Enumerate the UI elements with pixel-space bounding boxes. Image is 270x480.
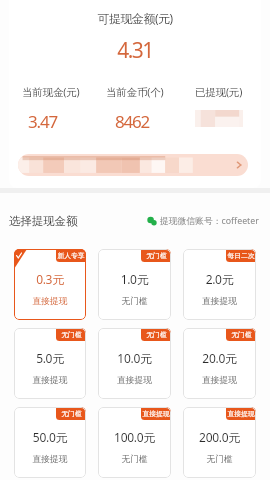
staticText: 100.0元 <box>98 429 171 445</box>
button[interactable]: 活动公告 <box>18 154 248 176</box>
staticText: 5.0元 <box>14 350 86 366</box>
button[interactable]: 10.0元 <box>98 328 171 399</box>
staticText: 直接提现 <box>183 296 256 307</box>
staticText: 50.0元 <box>14 429 86 445</box>
button[interactable]: 5.0元 <box>14 328 86 399</box>
staticText: 无门槛 <box>231 330 252 339</box>
button[interactable]: 0.3元 <box>14 249 86 320</box>
staticText: 1.0元 <box>98 271 171 287</box>
staticText: 无门槛 <box>183 454 256 465</box>
button[interactable]: 50.0元 <box>14 407 86 478</box>
staticText: 当前金币(个) <box>106 85 164 99</box>
staticText: 直接提现 <box>227 409 255 418</box>
staticText: 4.31 <box>9 36 261 65</box>
staticText: 无门槛 <box>146 330 167 339</box>
button[interactable]: 1.0元 <box>98 249 171 320</box>
staticText: 无门槛 <box>146 251 167 260</box>
staticText: 直接提现 <box>14 454 86 465</box>
staticText: 20.0元 <box>183 350 256 366</box>
staticText: 直接提现 <box>98 375 171 386</box>
staticText: 每日二次 <box>227 251 255 260</box>
staticText: 2.0元 <box>183 271 256 287</box>
staticText: 8462 <box>115 110 150 133</box>
staticText: 新人专享 <box>57 251 85 260</box>
staticText: 无门槛 <box>98 454 171 465</box>
staticText: 可提现金额(元) <box>9 10 261 26</box>
staticText: 无门槛 <box>61 330 82 339</box>
staticText: 直接提现 <box>183 375 256 386</box>
staticText: 0.3元 <box>14 271 86 287</box>
staticText: 3.47 <box>28 110 57 133</box>
button[interactable]: 20.0元 <box>183 328 256 399</box>
staticText: 已提现(元) <box>195 85 243 99</box>
staticText: 直接提现 <box>142 409 170 418</box>
staticText: 200.0元 <box>183 429 256 445</box>
staticText: 无门槛 <box>98 296 171 307</box>
staticText: 10.0元 <box>98 350 171 366</box>
staticText: 提现微信账号：coffeeter <box>160 215 259 227</box>
staticText: 选择提现金额 <box>9 214 78 228</box>
staticText: 无门槛 <box>61 409 82 418</box>
button[interactable]: 100.0元 <box>98 407 171 478</box>
staticText: 当前现金(元) <box>22 85 80 99</box>
button[interactable]: 2.0元 <box>183 249 256 320</box>
staticText: 直接提现 <box>14 375 86 386</box>
staticText: 直接提现 <box>14 296 86 307</box>
button[interactable]: 200.0元 <box>183 407 256 478</box>
